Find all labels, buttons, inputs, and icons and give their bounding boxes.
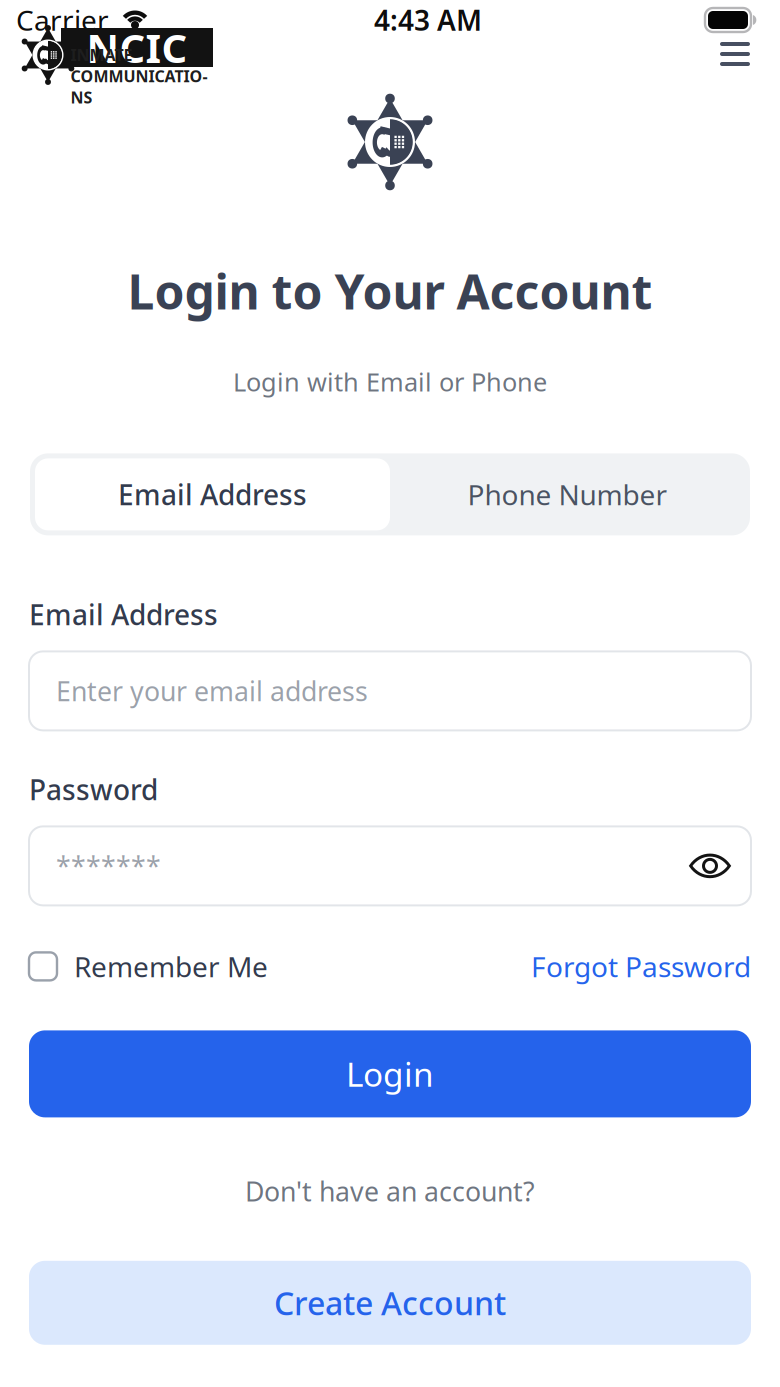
button[interactable]: Login [29, 1030, 751, 1117]
staticText: Forgot Password [531, 948, 751, 985]
staticText: ******* [56, 848, 161, 884]
button[interactable]: Show password [689, 851, 731, 881]
staticText: NCIC [86, 21, 187, 74]
button[interactable]: Phone Number [390, 458, 745, 530]
staticText: Email Address [29, 596, 218, 633]
staticText: Email Address [118, 476, 307, 513]
staticText: Login to Your Account [127, 259, 652, 323]
staticText: Carrier [16, 1, 109, 39]
staticText: Login with Email or Phone [233, 365, 547, 398]
staticText: 4:43 AM [374, 1, 482, 39]
staticText: Create Account [274, 1281, 506, 1324]
button[interactable]: Email Address [35, 458, 390, 530]
button[interactable]: Forgot Password [531, 943, 751, 990]
button[interactable]: Remember Me [29, 943, 268, 990]
staticText: Phone Number [467, 476, 667, 513]
staticText: INMATE COMMUNICATIONS [70, 44, 207, 108]
button[interactable]: Menu [710, 32, 760, 76]
staticText: Remember Me [74, 948, 268, 985]
button[interactable]: Create Account [29, 1261, 751, 1345]
staticText: Don't have an account? [245, 1173, 535, 1209]
staticText: Password [29, 771, 158, 808]
staticText: Enter your email address [56, 673, 368, 709]
staticText: Login [346, 1052, 434, 1096]
